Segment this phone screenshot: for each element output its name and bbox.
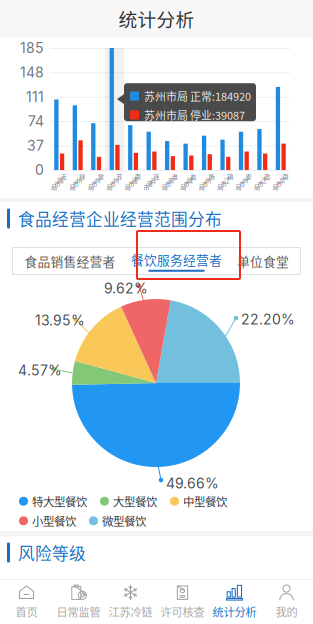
staticText: 安	[168, 175, 174, 184]
staticText: 市	[128, 179, 134, 188]
staticText: 苏州市局 正常:184920	[144, 88, 251, 104]
staticText: 37	[27, 137, 44, 154]
button[interactable]: 日常监管	[52, 580, 104, 624]
staticText: 局	[69, 182, 75, 191]
staticText: 4.57%	[18, 362, 62, 379]
staticText: 局	[272, 182, 278, 191]
staticText: 南	[135, 172, 141, 181]
staticText: 市	[54, 179, 60, 188]
staticText: 市	[239, 179, 245, 188]
staticText: 市	[91, 179, 97, 188]
staticText: 统计分析	[118, 5, 194, 32]
staticText: 州	[242, 175, 248, 184]
staticText: 单位食堂	[237, 252, 289, 270]
staticText: 苏	[116, 172, 122, 181]
staticText: 通	[131, 175, 137, 184]
staticText: 统计分析	[212, 603, 256, 620]
staticText: 局	[254, 182, 260, 191]
button[interactable]: 许可核查	[156, 580, 208, 624]
staticText: 49.66%	[166, 475, 219, 492]
staticText: 小型餐饮	[32, 512, 76, 529]
staticText: 镇	[227, 172, 233, 181]
staticText: 南	[282, 172, 288, 181]
staticText: 州	[113, 175, 119, 184]
staticText: 苏州市局 停业:39087	[144, 107, 245, 123]
staticText: 云	[150, 175, 156, 184]
button[interactable]: 首页	[0, 580, 52, 624]
staticText: 食品销售经营者	[24, 252, 115, 270]
staticText: 市	[257, 179, 263, 188]
staticText: 京	[279, 175, 285, 184]
staticText: 市	[73, 179, 79, 188]
staticText: 无	[61, 172, 67, 181]
staticText: 州	[76, 175, 82, 184]
staticText: 市	[110, 179, 116, 188]
staticText: 城	[187, 175, 193, 184]
staticText: 局	[125, 182, 131, 191]
staticText: 州	[94, 175, 100, 184]
staticText: 148	[20, 64, 44, 81]
button[interactable]: 统计分析	[208, 580, 260, 624]
staticText: 迁	[261, 175, 267, 184]
staticText: 市	[202, 179, 208, 188]
staticText: 徐	[79, 172, 85, 181]
staticText: 首页	[15, 603, 37, 620]
staticText: 餐饮服务经营者	[131, 250, 222, 269]
staticText: 局	[162, 182, 168, 191]
staticText: 大型餐饮	[113, 493, 157, 509]
staticText: 市	[183, 179, 189, 188]
staticText: 风险等级	[18, 540, 86, 564]
staticText: 局	[199, 182, 205, 191]
staticText: 市	[143, 182, 149, 191]
staticText: 食品经营企业经营范围分布	[18, 206, 222, 230]
staticText: 微型餐饮	[102, 512, 146, 529]
staticText: 74	[28, 113, 44, 130]
staticText: 111	[26, 88, 44, 105]
staticText: 锡	[58, 175, 64, 184]
staticText: 泰	[245, 172, 251, 181]
staticText: 江苏冷链	[108, 603, 152, 620]
staticText: 市	[276, 179, 282, 188]
staticText: 江	[224, 175, 230, 184]
button[interactable]: 食品销售经营者	[12, 247, 128, 275]
staticText: 淮	[172, 172, 178, 181]
button[interactable]: 江苏冷链	[104, 580, 156, 624]
staticText: 22.20%	[241, 311, 295, 328]
button[interactable]: 单位食堂	[225, 247, 301, 275]
staticText: 局	[51, 182, 57, 191]
staticText: 宿	[264, 172, 270, 181]
staticText: 185	[20, 39, 44, 56]
staticText: 市	[220, 179, 226, 188]
staticText: 局	[180, 182, 186, 191]
staticText: 扬	[209, 172, 215, 181]
staticText: 州	[205, 175, 211, 184]
staticText: 中型餐饮	[183, 493, 227, 509]
staticText: 连	[153, 172, 159, 181]
staticText: 市	[165, 179, 171, 188]
staticText: 0	[35, 161, 44, 178]
staticText: 常	[98, 172, 104, 181]
staticText: 许可核查	[160, 603, 204, 620]
staticText: 特大型餐饮	[32, 493, 87, 509]
staticText: 局	[217, 182, 223, 191]
staticText: 我的	[275, 603, 297, 620]
button[interactable]: 我的	[260, 580, 312, 624]
staticText: 日常监管	[56, 603, 100, 620]
staticText: 局	[236, 182, 242, 191]
staticText: 局	[88, 182, 94, 191]
staticText: 9.62%	[104, 280, 148, 297]
staticText: 盐	[190, 172, 196, 181]
staticText: 局	[106, 182, 112, 191]
staticText: 港	[147, 179, 153, 188]
staticText: 13.95%	[35, 312, 85, 329]
button[interactable]: 餐饮服务经营者	[128, 247, 225, 275]
